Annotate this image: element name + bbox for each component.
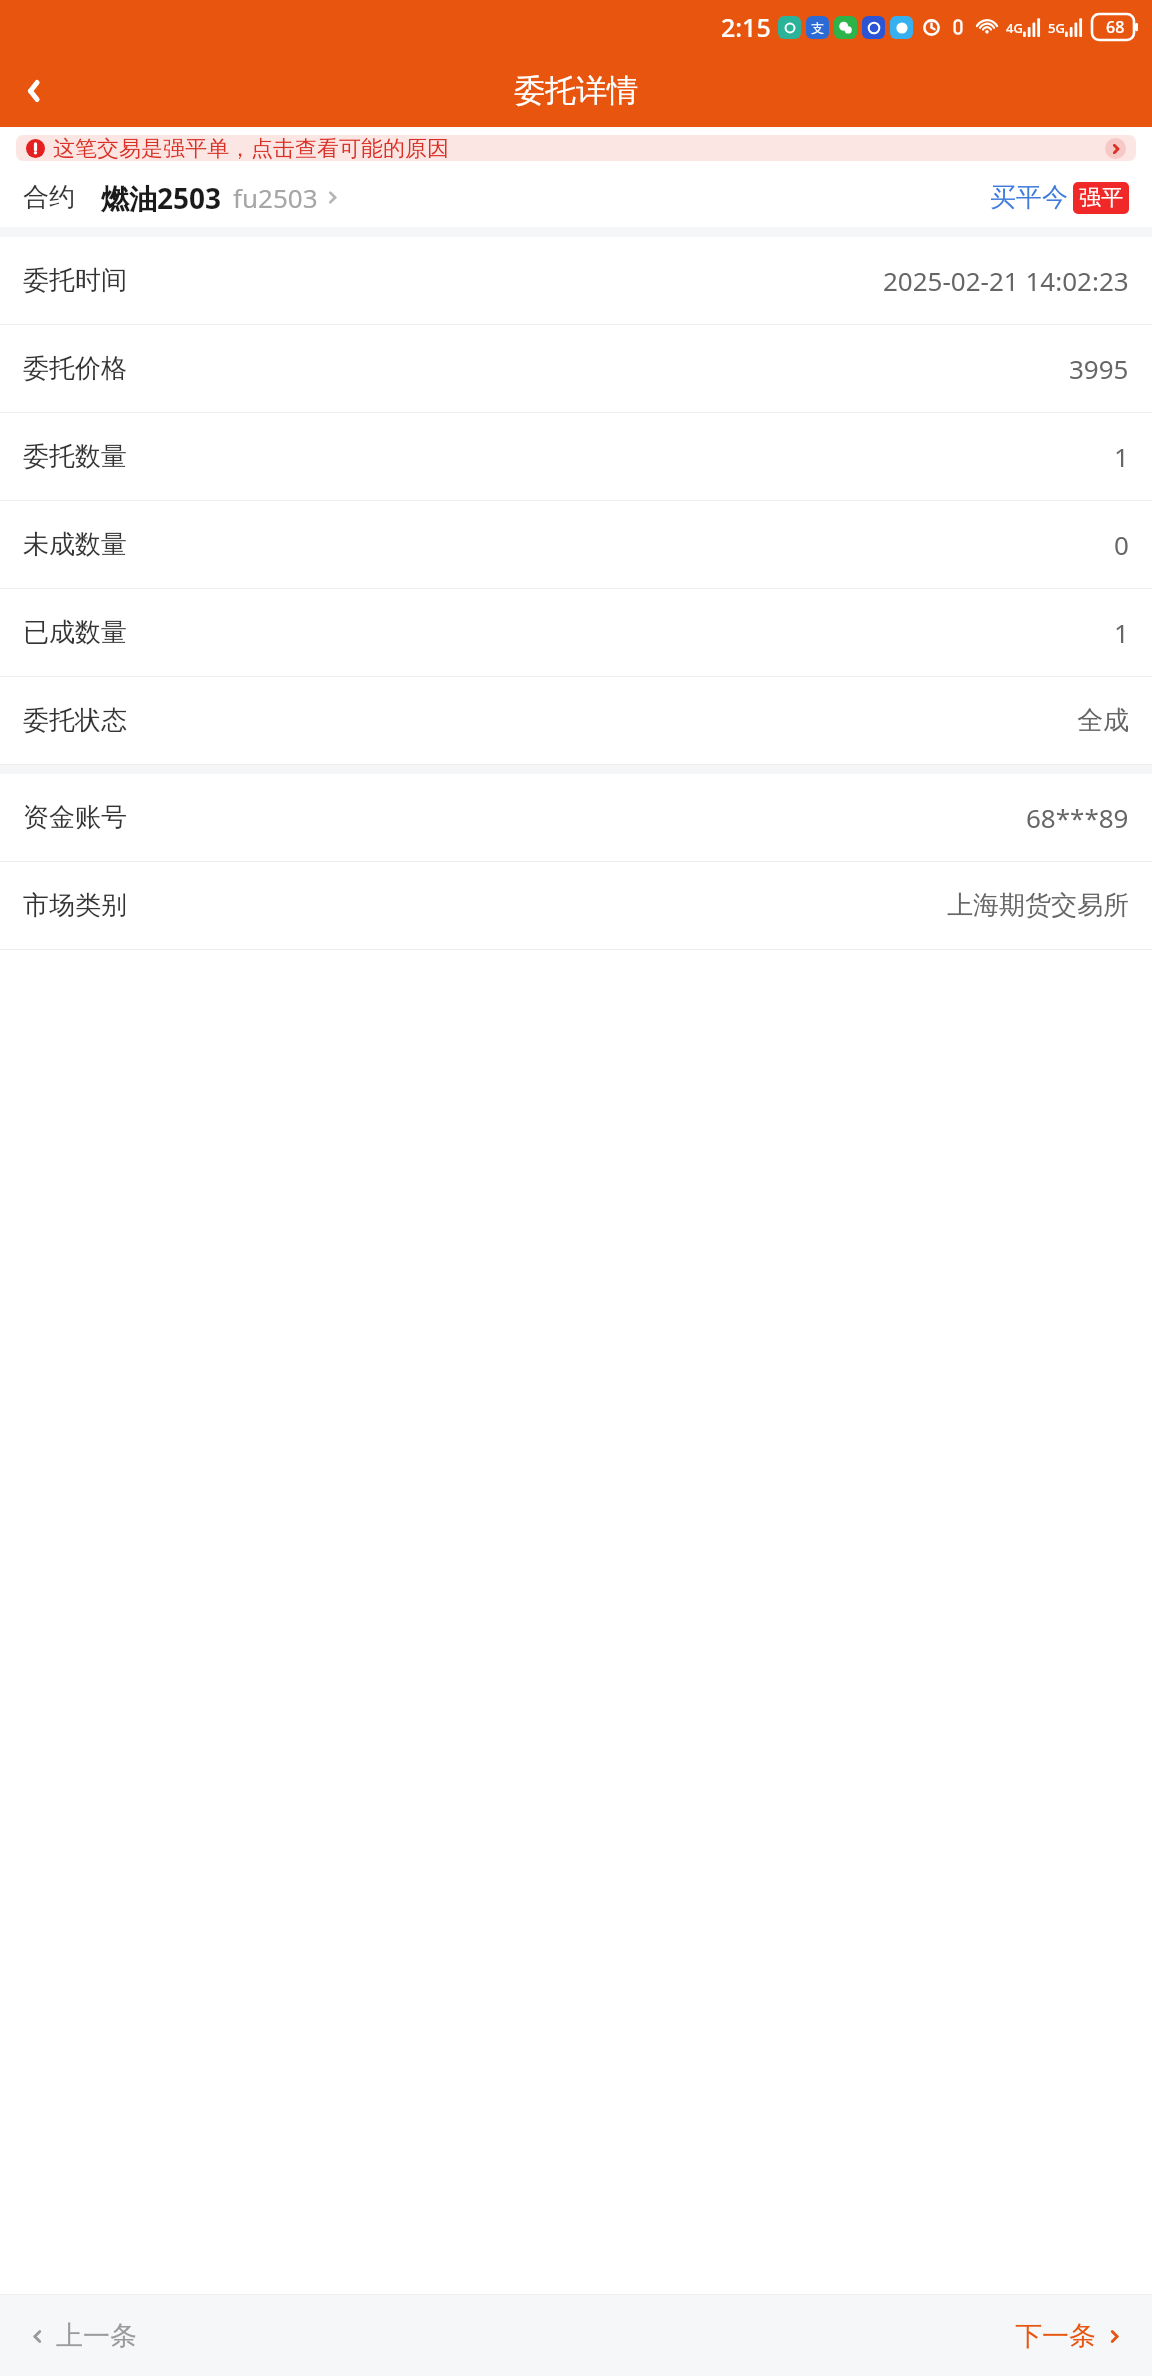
staticText: 委托状态 [23,704,127,737]
staticText: 强平 [1079,184,1123,212]
button[interactable]: 下一条 [997,2307,1152,2365]
button[interactable]: Back [12,69,56,113]
staticText: 资金账号 [23,801,127,834]
staticText: 0 [1114,527,1129,562]
staticText: 1 [1114,439,1129,474]
staticText: 市场类别 [23,889,127,922]
staticText: 下一条 [1015,2319,1096,2353]
staticText: 合约 [23,181,75,214]
staticText: 这笔交易是强平单，点击查看可能的原因 [53,135,449,161]
button[interactable]: 委托时间 [0,237,1152,324]
button[interactable]: 已成数量 [0,589,1152,676]
button[interactable]: 资金账号 [0,774,1152,861]
staticText: 未成数量 [23,528,127,561]
staticText: 2:15 [721,10,771,44]
staticText: 委托价格 [23,352,127,385]
staticText: 上一条 [56,2319,137,2353]
staticText: 全成 [1077,704,1129,737]
staticText: 支 [811,20,824,36]
staticText: 上海期货交易所 [947,889,1129,922]
staticText: fu2503 [233,180,318,215]
staticText: 5G [1048,19,1065,37]
staticText: 已成数量 [23,616,127,649]
button[interactable]: 未成数量 [0,501,1152,588]
staticText: 4G [1006,19,1023,37]
button[interactable]: 委托状态 [0,677,1152,764]
staticText: 2025-02-21 14:02:23 [883,263,1129,298]
staticText: 3995 [1069,351,1129,386]
button[interactable]: 委托数量 [0,413,1152,500]
staticText: 委托详情 [514,71,638,110]
staticText: 1 [1114,615,1129,650]
button[interactable]: 市场类别 [0,862,1152,949]
staticText: 委托数量 [23,440,127,473]
button[interactable]: 这笔交易是强平单，点击查看可能的原因 [16,135,1136,161]
button[interactable]: 合约 [0,168,1152,227]
button[interactable]: 委托价格 [0,325,1152,412]
staticText: 委托时间 [23,264,127,297]
staticText: 买平今 [990,181,1068,214]
button[interactable]: 上一条 [0,2307,155,2365]
staticText: 燃油2503 [101,179,222,217]
staticText: 68***89 [1026,800,1129,835]
staticText: 68 [1106,16,1125,38]
